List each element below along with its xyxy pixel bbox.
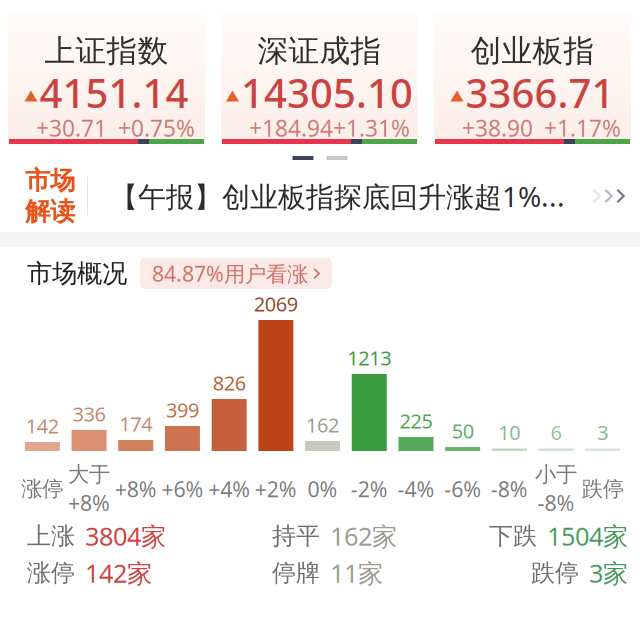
button[interactable]: 深证成指 <box>221 11 418 144</box>
staticText: 深证成指 <box>257 32 381 70</box>
staticText: -4% <box>397 475 434 503</box>
staticText: 162家 <box>330 519 397 553</box>
staticText: 10 <box>498 419 520 445</box>
staticText: +4% <box>208 475 250 503</box>
staticText: 84.87%用户看涨 <box>152 259 308 288</box>
staticText: +30.71 <box>36 113 107 143</box>
staticText: 市场概况 <box>27 258 127 289</box>
staticText: +38.90 <box>462 113 533 143</box>
staticText: 142家 <box>85 556 152 590</box>
staticText: 涨停 <box>27 558 75 588</box>
staticText: +1.31% <box>333 113 410 143</box>
staticText: 跌停 <box>531 558 579 588</box>
button[interactable]: 市场 <box>0 160 640 232</box>
button[interactable]: 创业板指 <box>434 11 631 144</box>
staticText: 142 <box>26 412 59 439</box>
staticText: -8% <box>537 488 574 517</box>
staticText: 174 <box>119 410 152 437</box>
staticText: 跌停 <box>582 476 624 502</box>
staticText: 下跌 <box>489 521 537 551</box>
staticText: +8% <box>115 475 157 503</box>
staticText: 50 <box>452 417 474 444</box>
button[interactable]: 84.87%用户看涨 <box>140 258 332 289</box>
staticText: -2% <box>351 475 388 503</box>
staticText: 1504家 <box>547 519 628 553</box>
staticText: 3家 <box>589 556 628 590</box>
staticText: 3 <box>597 419 608 445</box>
staticText: 1213 <box>347 344 391 371</box>
staticText: 上证指数 <box>44 32 168 70</box>
staticText: -6% <box>444 475 481 503</box>
staticText: 4151.14 <box>39 66 188 119</box>
staticText: 大于 <box>68 461 110 487</box>
staticText: 涨停 <box>21 476 63 502</box>
staticText: 上涨 <box>27 521 75 551</box>
staticText: 持平 <box>272 521 320 551</box>
staticText: 14305.10 <box>241 66 413 119</box>
staticText: 225 <box>399 407 432 434</box>
staticText: 826 <box>213 369 246 396</box>
staticText: 11家 <box>330 556 383 590</box>
staticText: 解读 <box>25 196 75 227</box>
staticText: 162 <box>306 411 339 438</box>
staticText: 399 <box>166 396 199 423</box>
staticText: 0% <box>308 475 338 503</box>
staticText: 6 <box>550 419 561 445</box>
staticText: 3366.71 <box>465 66 614 119</box>
staticText: -8% <box>491 475 528 503</box>
staticText: 创业板指 <box>470 32 594 70</box>
staticText: +2% <box>255 475 297 503</box>
button[interactable]: 上证指数 <box>8 11 205 144</box>
staticText: +184.94 <box>249 113 333 143</box>
staticText: +6% <box>161 475 203 503</box>
staticText: 停牌 <box>272 558 320 588</box>
staticText: 3804家 <box>85 519 166 553</box>
staticText: +1.17% <box>544 113 621 143</box>
staticText: 【午报】创业板指探底回升涨超1%，两市… <box>110 177 588 215</box>
staticText: 336 <box>73 400 106 427</box>
staticText: +0.75% <box>118 113 195 143</box>
staticText: 市场 <box>25 165 75 196</box>
staticText: 小于 <box>535 461 577 487</box>
staticText: 2069 <box>254 290 298 317</box>
staticText: +8% <box>68 488 110 517</box>
